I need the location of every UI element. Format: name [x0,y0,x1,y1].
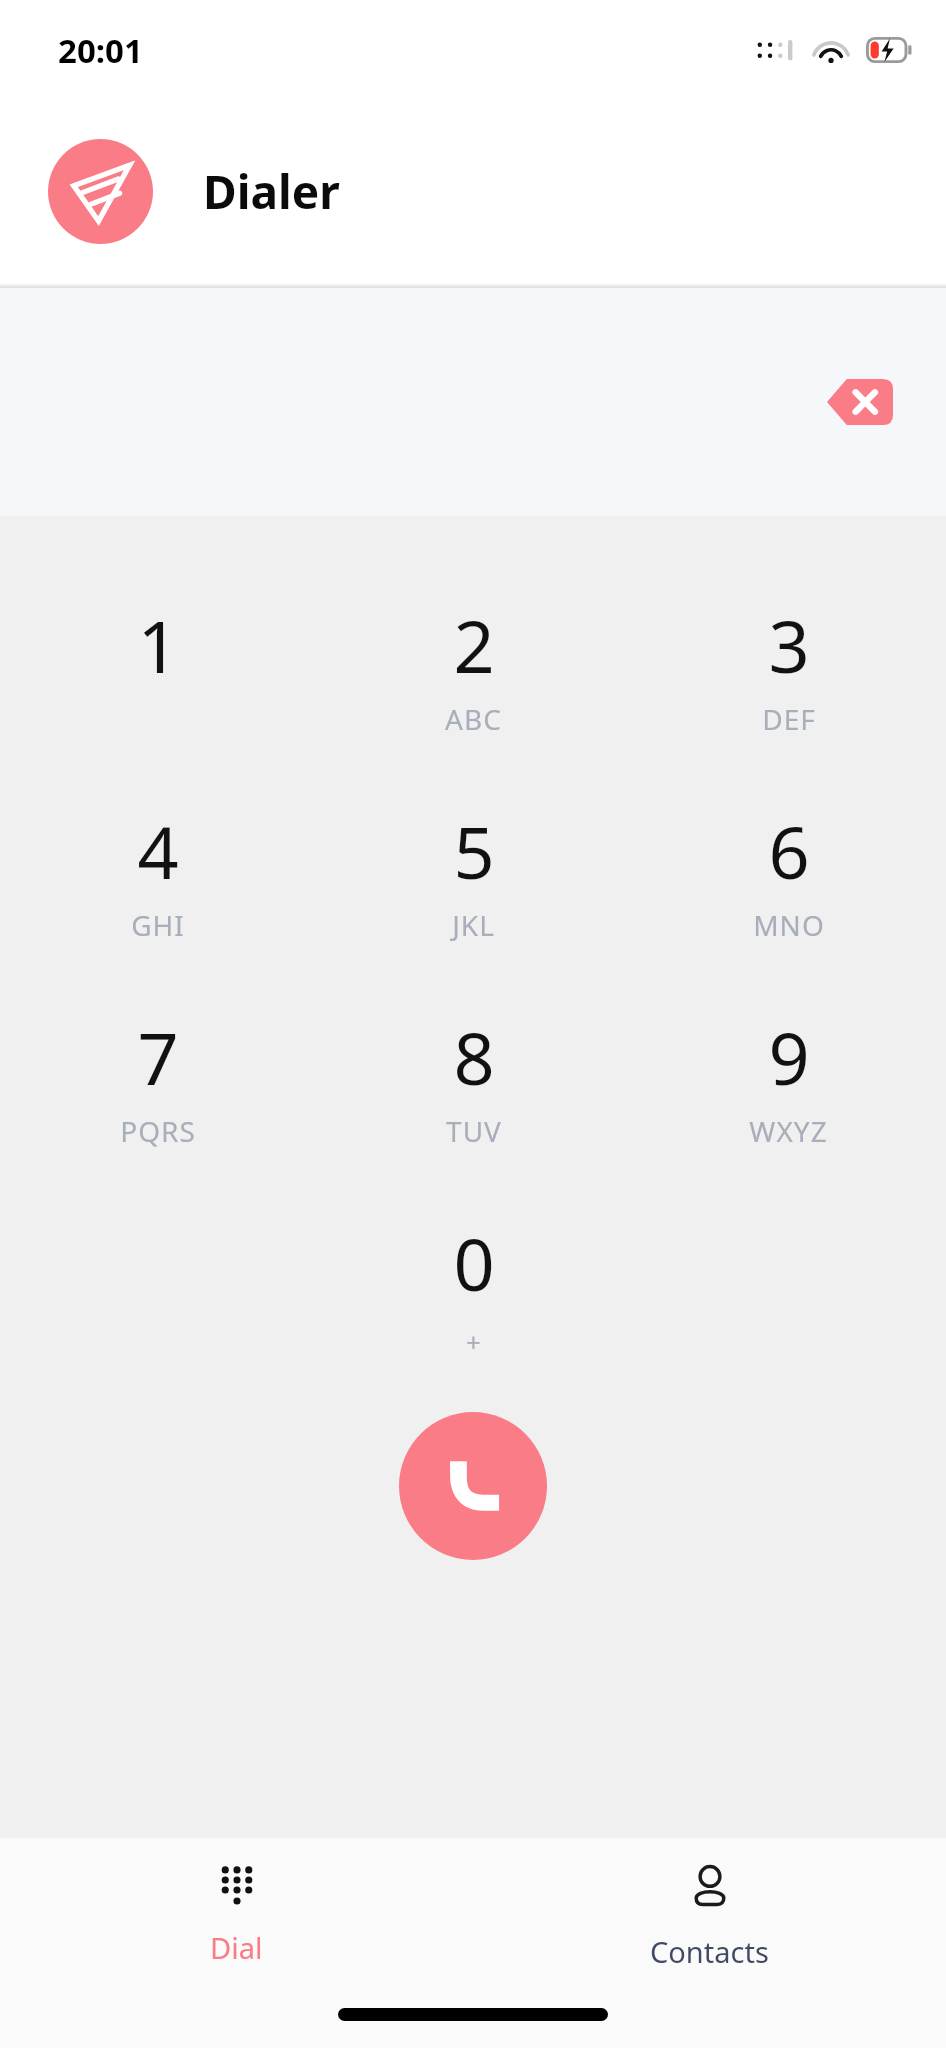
button[interactable]: 2 [316,588,631,794]
staticText: WXYZ [749,1112,828,1150]
button[interactable]: 3 [631,588,946,794]
staticText: JKL [452,906,495,944]
button[interactable]: Dial [0,1838,473,1988]
staticText: 8 [453,1008,495,1106]
staticText: 4 [137,802,179,900]
staticText: 7 [137,1008,179,1106]
staticText: 2 [453,596,495,694]
button[interactable]: 9 [631,1000,946,1206]
staticText: 1 [137,596,179,694]
staticText: + [466,1324,482,1359]
button[interactable]: 6 [631,794,946,1000]
button[interactable]: 4 [0,794,316,1000]
staticText: Dial [210,1928,263,1967]
staticText: Dialer [203,160,340,223]
staticText: 20:01 [58,28,143,73]
staticText: PQRS [120,1112,196,1150]
button[interactable]: Call [399,1412,547,1560]
staticText: MNO [753,906,825,944]
staticText: 5 [453,802,495,900]
button[interactable]: Contacts [473,1838,946,1988]
staticText: 0 [453,1214,495,1312]
staticText: GHI [131,906,185,944]
staticText: 3 [768,596,810,694]
staticText: 6 [768,802,810,900]
button[interactable]: 8 [316,1000,631,1206]
button[interactable]: 1 [0,588,316,794]
button[interactable]: 5 [316,794,631,1000]
staticText: TUV [446,1112,502,1150]
button[interactable]: 7 [0,1000,316,1206]
button[interactable]: Backspace [820,371,900,433]
button[interactable]: 0 [316,1206,631,1412]
staticText: DEF [762,700,816,738]
staticText: Contacts [650,1932,769,1971]
staticText: 9 [768,1008,810,1106]
staticText: ABC [445,700,502,738]
